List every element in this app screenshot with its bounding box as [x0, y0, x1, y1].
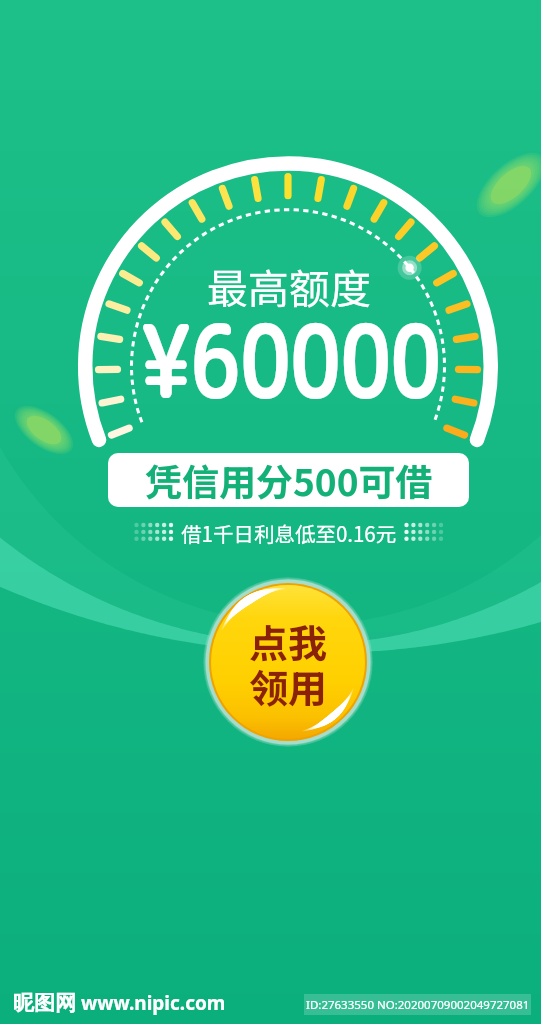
staticText: 借1千日利息低至0.16元 [181, 518, 397, 548]
staticText: ¥60000 [140, 289, 441, 430]
staticText: 凭信用分500可借 [145, 453, 433, 507]
staticText: ID:27633550 NO:20200709002049727081 [306, 997, 530, 1013]
staticText: 昵图网 [13, 990, 76, 1016]
staticText: 点我 [249, 613, 328, 669]
button[interactable]: 点我 [203, 577, 373, 747]
button[interactable]: 凭信用分500可借 [108, 453, 469, 507]
staticText: www.nipic.com [76, 990, 226, 1016]
staticText: 最高额度 [207, 256, 371, 315]
staticText: 领用 [249, 658, 328, 714]
